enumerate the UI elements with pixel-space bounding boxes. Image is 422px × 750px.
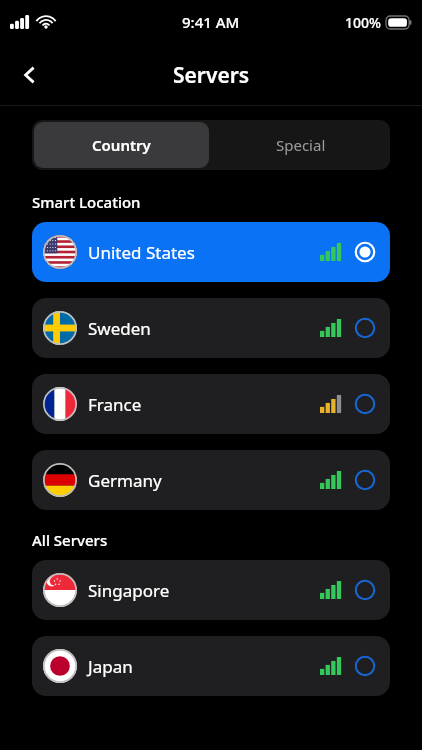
- staticText: 9:41 AM: [182, 12, 240, 32]
- staticText: Special: [276, 135, 326, 155]
- staticText: Smart Location: [32, 192, 141, 212]
- staticText: Country: [92, 135, 151, 155]
- button[interactable]: Germany: [32, 450, 390, 510]
- button[interactable]: United States: [32, 222, 390, 282]
- staticText: Singapore: [88, 579, 170, 602]
- staticText: Sweden: [88, 317, 151, 340]
- button[interactable]: Special: [211, 120, 390, 170]
- button[interactable]: Back: [8, 53, 52, 97]
- button[interactable]: Japan: [32, 636, 390, 696]
- staticText: France: [88, 393, 142, 416]
- staticText: Servers: [173, 61, 250, 90]
- staticText: Germany: [88, 469, 162, 492]
- button[interactable]: Sweden: [32, 298, 390, 358]
- button[interactable]: France: [32, 374, 390, 434]
- staticText: All Servers: [32, 530, 108, 550]
- staticText: Japan: [88, 655, 133, 678]
- button[interactable]: Singapore: [32, 560, 390, 620]
- staticText: United States: [88, 241, 195, 264]
- button[interactable]: Country: [34, 122, 209, 168]
- staticText: 100%: [345, 13, 381, 32]
